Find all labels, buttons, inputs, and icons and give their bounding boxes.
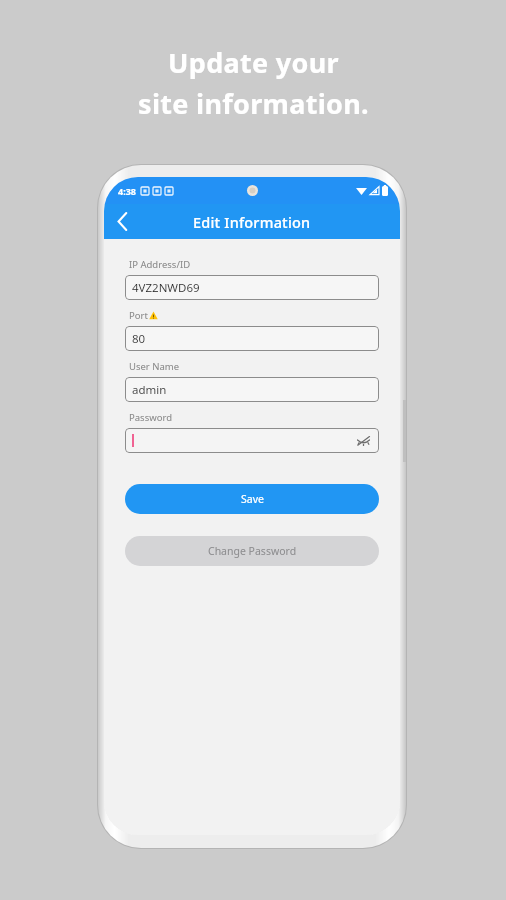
button[interactable]: 4VZ2NWD69 [125, 275, 379, 300]
button[interactable]: Show password [354, 432, 372, 450]
button[interactable]: Change Password [125, 536, 379, 566]
staticText: admin [132, 382, 167, 398]
staticText: 4VZ2NWD69 [132, 280, 200, 296]
staticText: Port [129, 309, 148, 322]
button[interactable]: 80 [125, 326, 379, 351]
staticText: Password [129, 411, 172, 424]
staticText: Update your [168, 44, 339, 81]
staticText: Edit Information [193, 212, 311, 232]
staticText: User Name [129, 360, 180, 373]
button[interactable]: Save [125, 484, 379, 514]
button[interactable]: Back [104, 204, 140, 239]
staticText: IP Address/ID [129, 258, 191, 271]
button[interactable]: admin [125, 377, 379, 402]
staticText: site information. [138, 85, 369, 122]
staticText: 4:38 [118, 185, 136, 197]
button[interactable]: Show password [125, 428, 379, 453]
staticText: Change Password [208, 544, 297, 558]
staticText: 80 [132, 331, 146, 347]
staticText: Save [241, 492, 264, 506]
